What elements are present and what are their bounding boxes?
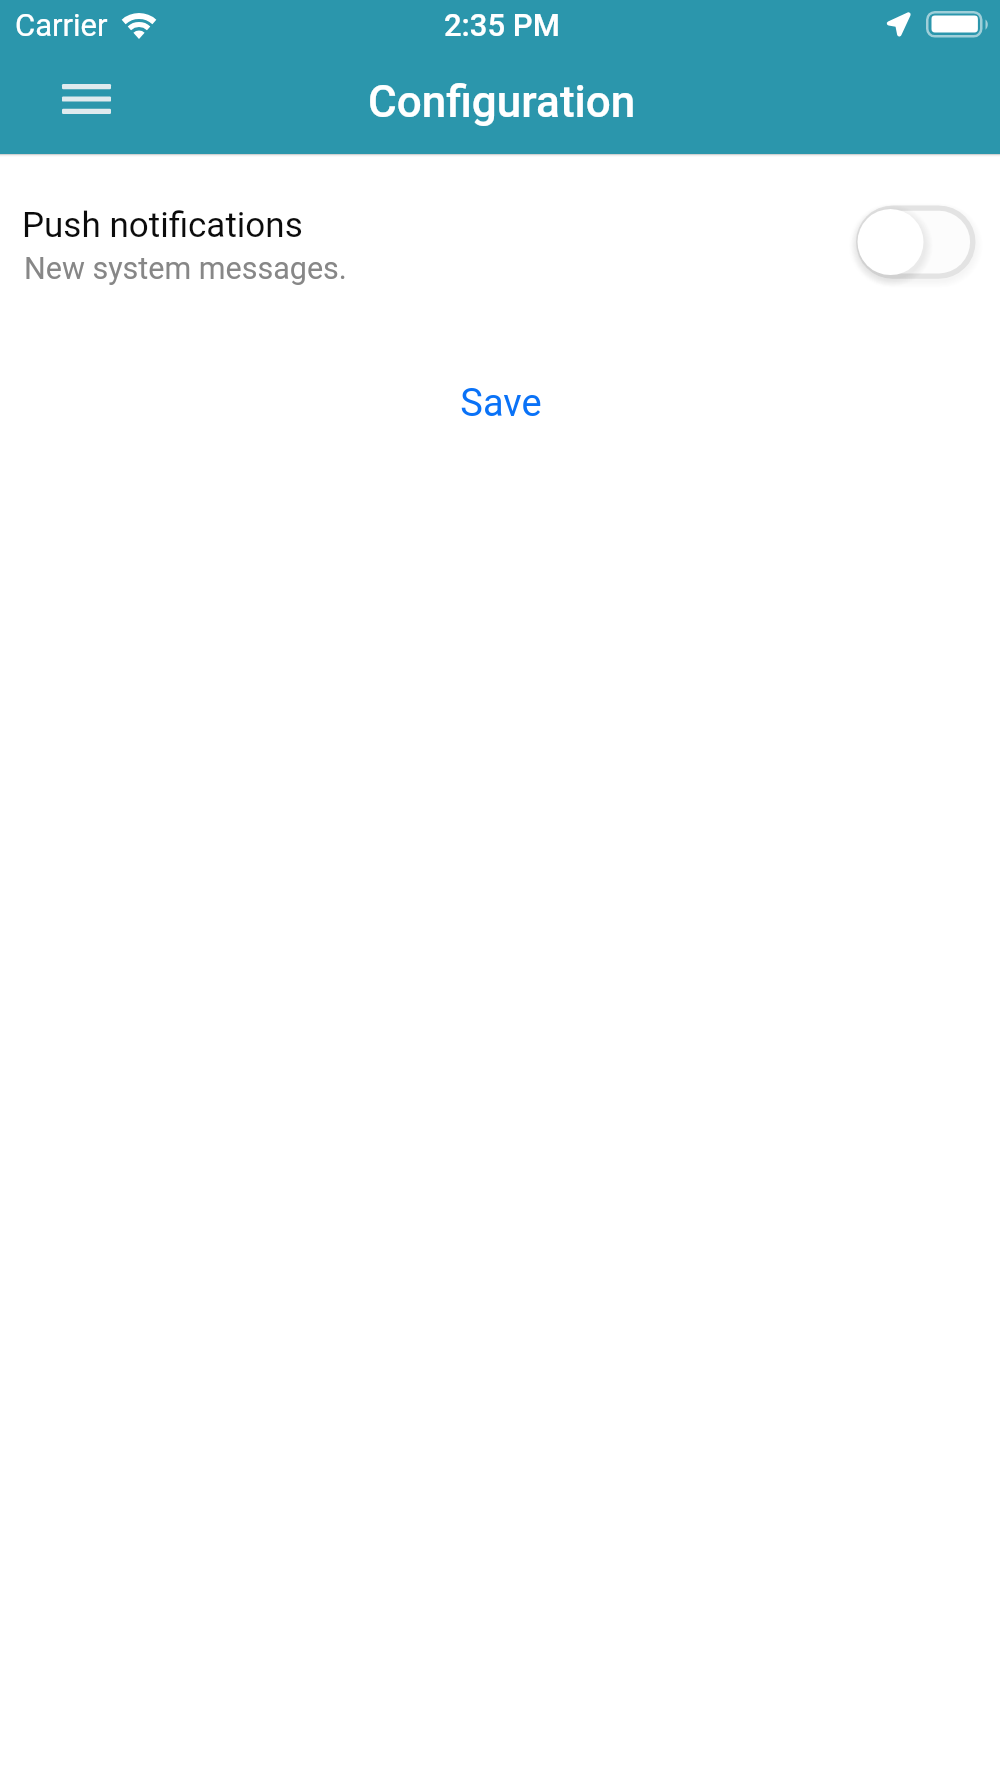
staticText: Carrier: [15, 7, 108, 43]
staticText: Save: [460, 381, 542, 417]
staticText: 2:35 PM: [444, 7, 560, 43]
staticText: Configuration: [368, 76, 636, 128]
button[interactable]: Push notifications toggle: [838, 187, 974, 283]
button[interactable]: Save: [426, 369, 576, 429]
button[interactable]: Menu: [33, 69, 140, 129]
staticText: New system messages.: [24, 251, 347, 287]
staticText: Push notifications: [22, 205, 303, 246]
button[interactable]: Push notifications: [0, 176, 1000, 308]
